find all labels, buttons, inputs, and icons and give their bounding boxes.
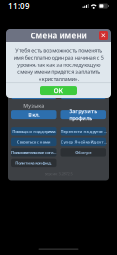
button[interactable]: Вкл.: [11, 90, 56, 99]
staticText: Супер Ячейка Идентификатор: [60, 139, 106, 144]
staticText: Музыка: [23, 102, 44, 109]
staticText: Вкл.: [28, 111, 39, 118]
button[interactable]: Политика конфид.: [11, 159, 56, 167]
staticText: Связаться с нами: [17, 139, 51, 144]
staticText: 11:09: [8, 1, 30, 11]
button[interactable]: Помощь и поддержка: [11, 127, 56, 136]
staticText: Русский: [72, 91, 95, 98]
staticText: Перенести на другое устройство: [60, 129, 106, 134]
staticText: Политика конфид.: [15, 160, 52, 165]
staticText: Об игре: [75, 150, 91, 155]
staticText: Пользовательское соглашение: [11, 150, 56, 155]
button[interactable]: Об игре: [60, 148, 106, 157]
staticText: Язык: [77, 82, 90, 89]
button[interactable]: Закрыть: [98, 30, 109, 41]
staticText: ✕: [100, 32, 106, 39]
staticText: ОК: [53, 86, 63, 95]
staticText: Загрузить профиль: [69, 107, 97, 122]
button[interactable]: Пользовательское соглашение: [11, 148, 56, 157]
staticText: Помощь и поддержка: [12, 129, 55, 134]
button[interactable]: Связаться с нами: [11, 138, 56, 146]
staticText: У тебя есть возможность поменять имя бес…: [13, 47, 103, 82]
button[interactable]: Загрузить профиль: [60, 110, 106, 119]
staticText: версия: 3.2872.5: [44, 171, 72, 176]
button[interactable]: Русский: [60, 90, 106, 99]
staticText: Смена имени: [30, 30, 86, 41]
button[interactable]: Вкл.: [11, 110, 56, 119]
staticText: Звуки: [26, 82, 41, 89]
button[interactable]: Перенести на другое устройство: [60, 127, 106, 136]
button[interactable]: ОК: [40, 86, 77, 95]
button[interactable]: Супер Ячейка Идентификатор: [60, 138, 106, 146]
